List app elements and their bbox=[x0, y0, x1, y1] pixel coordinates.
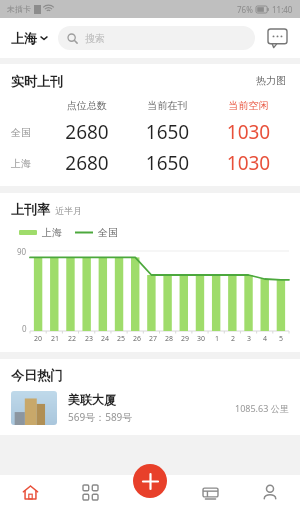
button[interactable]: Home bbox=[0, 475, 60, 509]
staticText: 未插卡 bbox=[7, 4, 31, 14]
staticText: 上刊率 bbox=[11, 201, 50, 217]
staticText: 29 bbox=[181, 334, 190, 344]
button[interactable]: 上海 bbox=[11, 26, 48, 50]
staticText: 当前在刊 bbox=[127, 99, 208, 112]
staticText: 2680 bbox=[47, 150, 127, 176]
staticText: 1030 bbox=[208, 119, 289, 145]
staticText: 2680 bbox=[47, 119, 127, 145]
staticText: 上海 bbox=[42, 226, 62, 239]
staticText: 上海 bbox=[11, 30, 37, 46]
staticText: 点位总数 bbox=[47, 99, 127, 112]
staticText: 25 bbox=[117, 334, 126, 344]
staticText: 1650 bbox=[127, 119, 208, 145]
button[interactable]: 热力图 bbox=[253, 71, 289, 90]
staticText: 11:40 bbox=[272, 4, 293, 15]
staticText: 上海 bbox=[11, 157, 31, 170]
staticText: 4 bbox=[263, 334, 268, 344]
staticText: 26 bbox=[133, 334, 142, 344]
staticText: 近半月 bbox=[55, 205, 82, 216]
button[interactable]: Profile bbox=[240, 475, 300, 509]
staticText: 美联大厦 bbox=[68, 392, 116, 407]
staticText: 27 bbox=[149, 334, 158, 344]
staticText: 全国 bbox=[11, 126, 31, 139]
staticText: 22 bbox=[68, 334, 77, 344]
staticText: 实时上刊 bbox=[11, 73, 63, 89]
button[interactable]: Messages bbox=[265, 26, 289, 50]
staticText: 2 bbox=[231, 334, 236, 344]
staticText: 1 bbox=[215, 334, 220, 344]
staticText: 28 bbox=[165, 334, 174, 344]
staticText: 当前空闲 bbox=[208, 99, 289, 112]
staticText: 热力图 bbox=[256, 74, 286, 87]
staticText: 569号：589号 bbox=[68, 410, 133, 424]
staticText: 3 bbox=[247, 334, 252, 344]
staticText: 1085.63 公里 bbox=[235, 402, 289, 414]
staticText: 0 bbox=[22, 323, 27, 334]
button[interactable]: Add bbox=[133, 464, 167, 498]
staticText: 全国 bbox=[98, 226, 118, 239]
staticText: 90 bbox=[17, 246, 27, 257]
staticText: 24 bbox=[101, 334, 110, 344]
staticText: 76% bbox=[237, 4, 253, 15]
staticText: 20 bbox=[34, 334, 43, 344]
staticText: 30 bbox=[197, 334, 206, 344]
button[interactable]: 搜索 bbox=[58, 26, 255, 50]
button[interactable]: 美联大厦 bbox=[11, 391, 289, 425]
staticText: 1650 bbox=[127, 150, 208, 176]
staticText: 1030 bbox=[208, 150, 289, 176]
button[interactable]: Categories bbox=[60, 475, 120, 509]
staticText: 今日热门 bbox=[11, 367, 63, 383]
staticText: 搜索 bbox=[85, 32, 105, 45]
button[interactable]: Orders bbox=[180, 475, 240, 509]
staticText: 23 bbox=[85, 334, 94, 344]
staticText: 5 bbox=[279, 334, 284, 344]
staticText: 21 bbox=[51, 334, 60, 344]
